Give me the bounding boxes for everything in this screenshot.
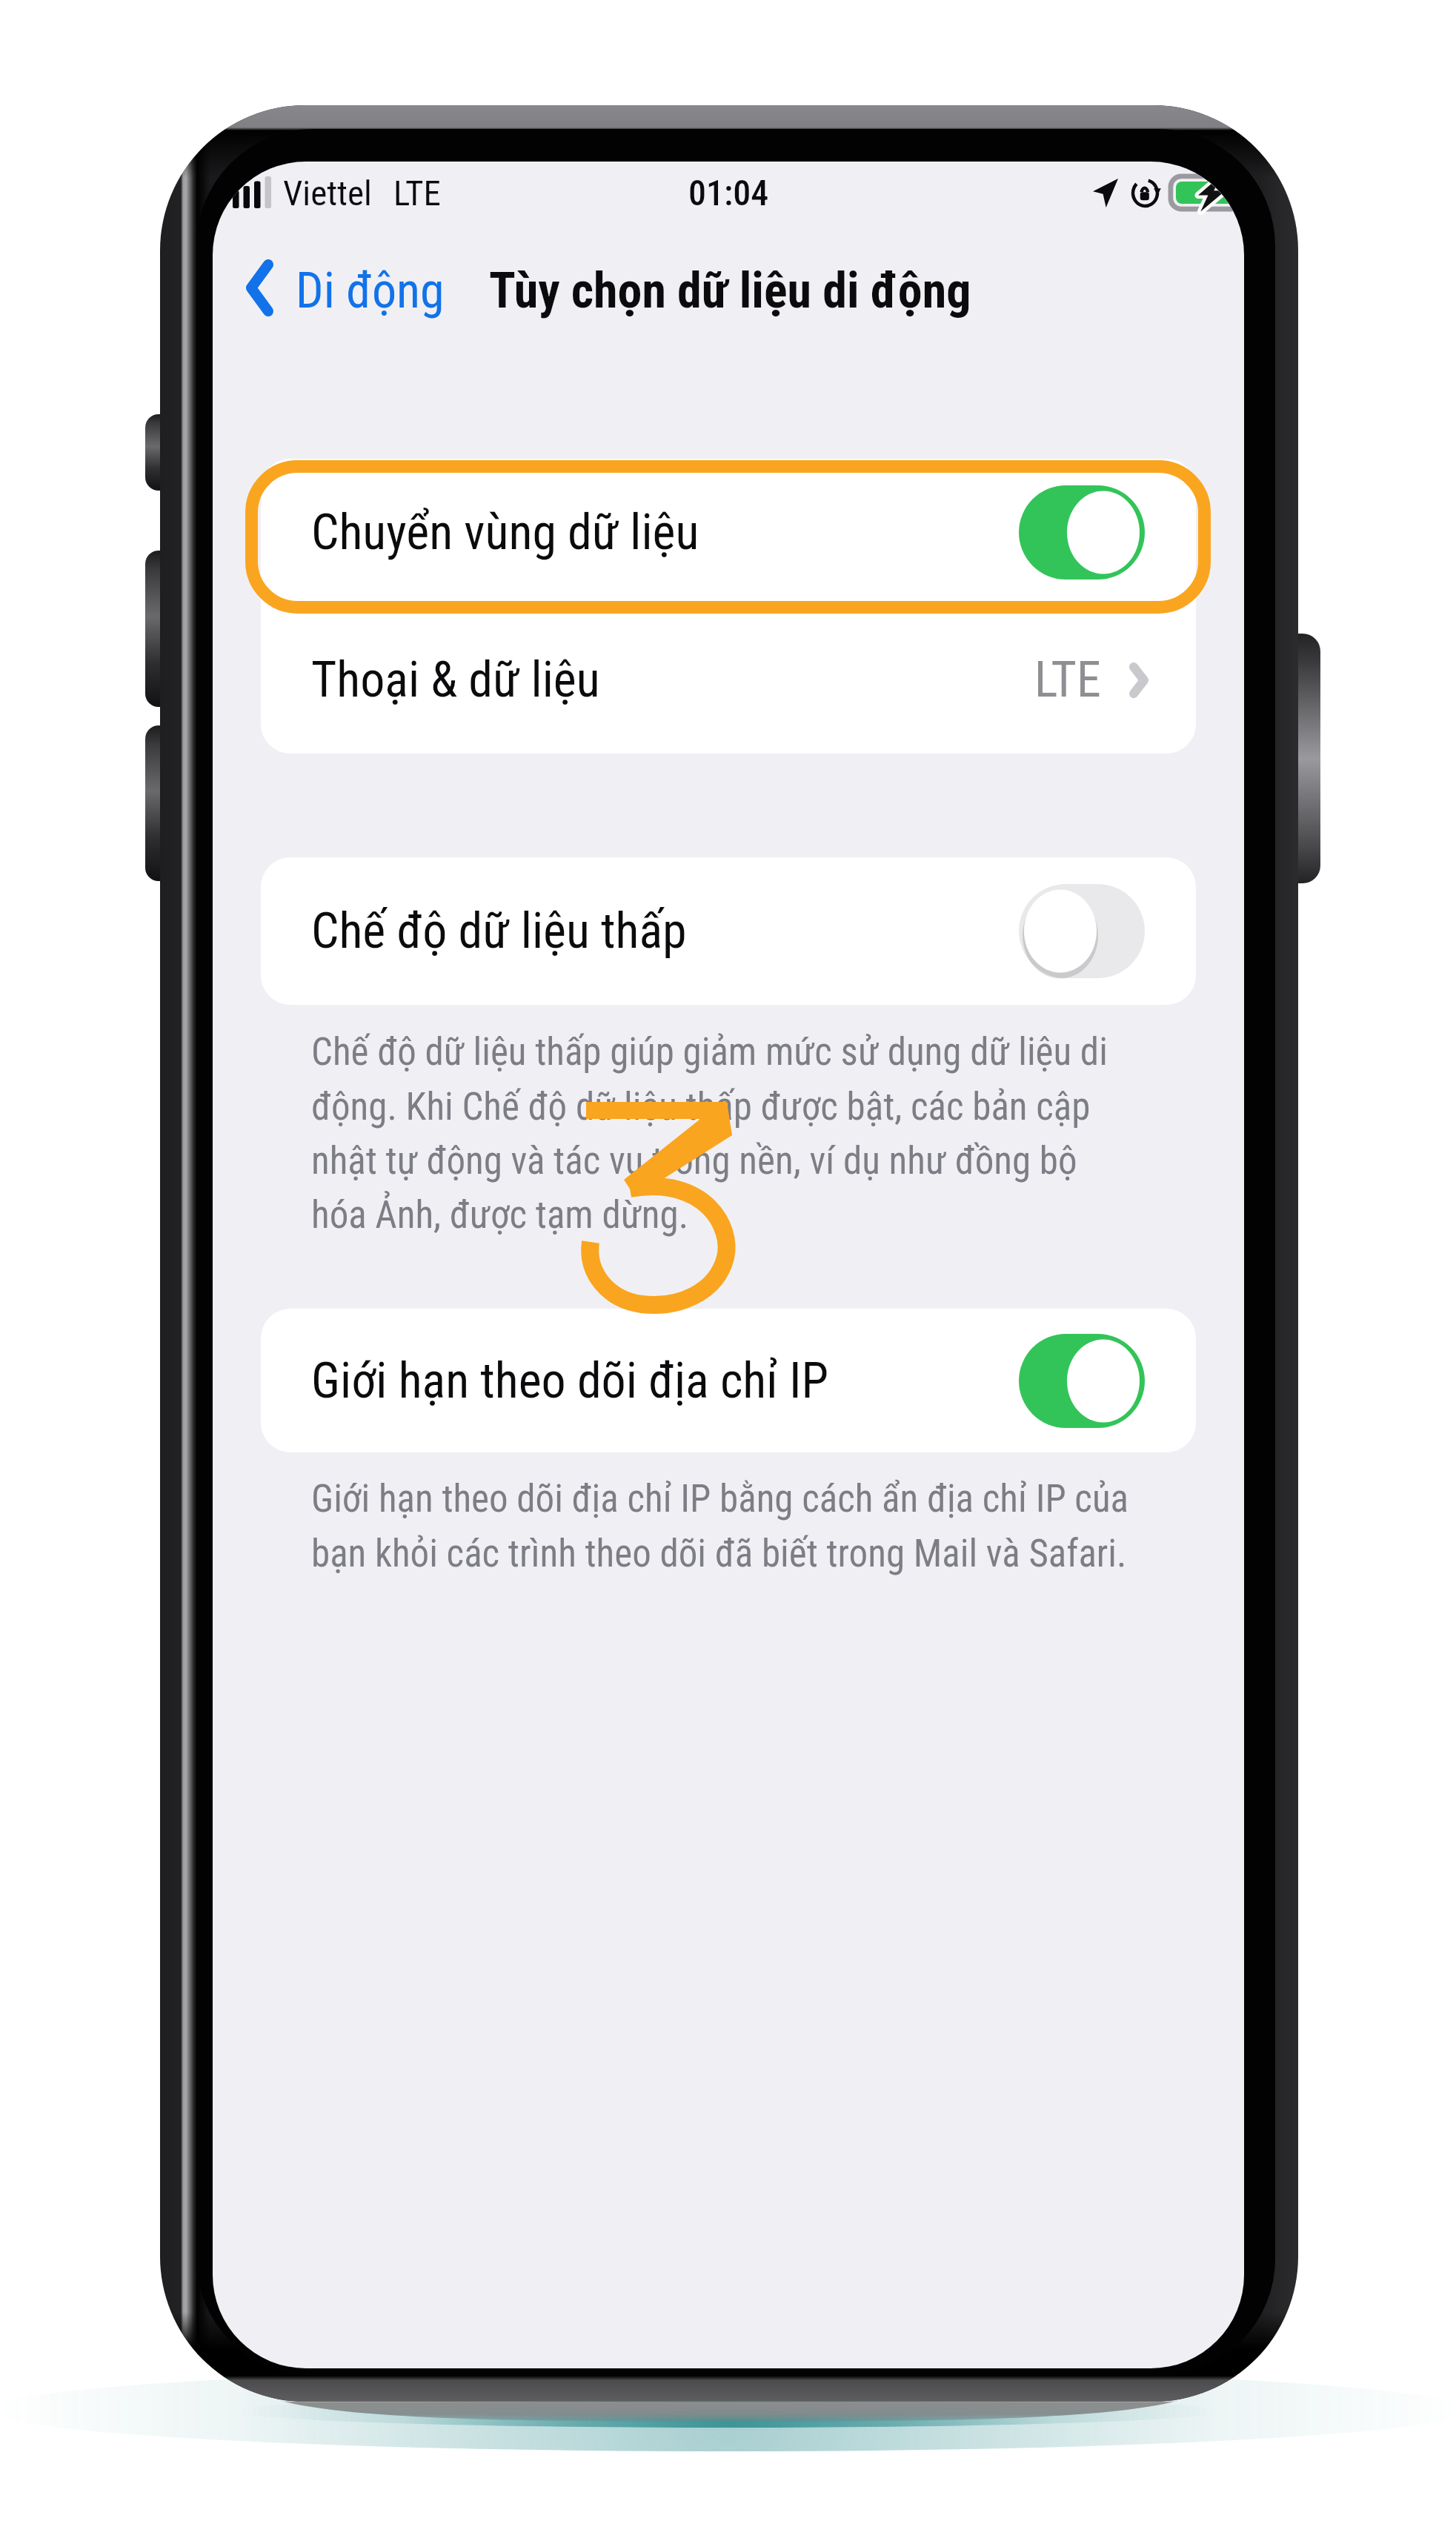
staticText: Tùy chọn dữ liệu di động (489, 262, 971, 319)
staticText: Giới hạn theo dõi địa chỉ IP (311, 1352, 828, 1409)
staticText: Chuyển vùng dữ liệu (311, 504, 699, 561)
staticText: Chế độ dữ liệu thấp (311, 903, 687, 960)
staticText: Chế độ dữ liệu thấp giúp giảm mức sử dụn… (311, 1030, 1130, 1237)
staticText: Viettel (283, 173, 372, 213)
staticText: LTE (1034, 651, 1101, 708)
button[interactable]: Bật (1019, 1334, 1145, 1428)
button[interactable]: Bật (1019, 485, 1145, 579)
staticText: Thoại & dữ liệu (311, 651, 600, 708)
button[interactable]: Thoại & dữ liệu (261, 606, 1196, 754)
button[interactable]: Tắt (1019, 884, 1145, 978)
staticText: 01:04 (688, 172, 769, 213)
button[interactable]: Chế độ dữ liệu thấp (261, 857, 1196, 1005)
button[interactable]: Giới hạn theo dõi địa chỉ IP (261, 1309, 1196, 1452)
button[interactable]: Quay lại Di động (235, 243, 448, 332)
button[interactable]: Chuyển vùng dữ liệu (261, 459, 1196, 606)
staticText: Giới hạn theo dõi địa chỉ IP bằng cách ẩ… (311, 1477, 1148, 1575)
staticText: LTE (393, 173, 441, 213)
staticText: Di động (296, 262, 445, 319)
